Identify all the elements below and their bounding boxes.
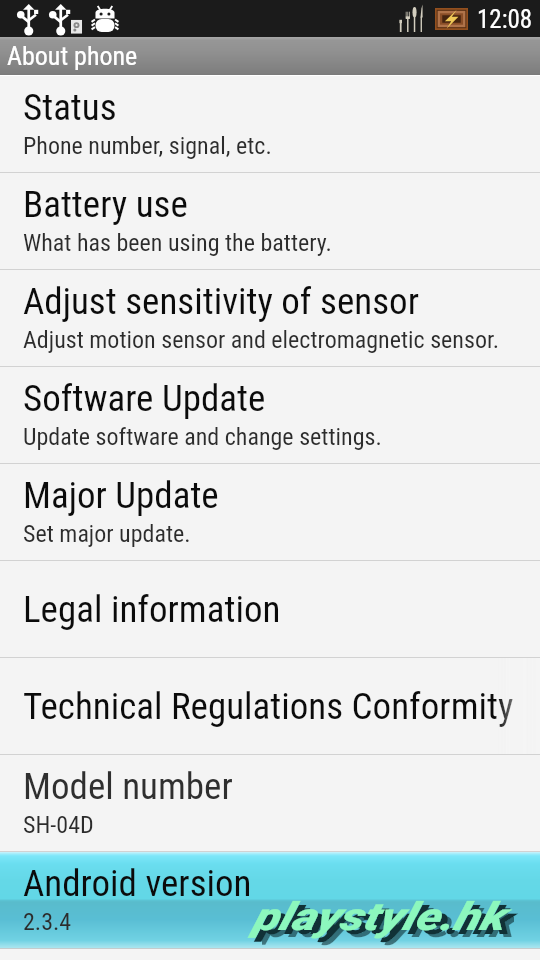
button[interactable]: Adjust sensitivity of sensor (0, 270, 540, 366)
staticText: 12:08 (477, 5, 533, 34)
staticText: Battery use (23, 183, 188, 226)
staticText: Android version (23, 862, 252, 905)
staticText: Adjust sensitivity of sensor (23, 280, 419, 323)
staticText: Major Update (23, 474, 219, 517)
button[interactable]: Battery use (0, 173, 540, 269)
button[interactable]: Legal information (0, 561, 540, 657)
staticText: playstyle.hk (258, 898, 510, 944)
staticText: Legal information (23, 588, 281, 631)
staticText: Set major update. (23, 520, 191, 548)
staticText: Technical Regulations Conformity (23, 685, 514, 728)
button[interactable]: Android version (0, 852, 540, 948)
staticText: playstyle.hk (252, 894, 504, 940)
button[interactable]: Software Update (0, 367, 540, 463)
button[interactable]: Technical Regulations Conformity (0, 658, 540, 754)
button[interactable]: Status (0, 76, 540, 172)
staticText: Update software and change settings. (23, 423, 382, 451)
staticText: About phone (7, 41, 138, 71)
staticText: What has been using the battery. (23, 229, 332, 257)
other: Status indicators (0, 0, 540, 37)
staticText: Status (23, 86, 117, 129)
staticText: Phone number, signal, etc. (23, 132, 272, 160)
button[interactable]: Major Update (0, 464, 540, 560)
staticText: playstyle.hk (262, 901, 514, 947)
staticText: 2.3.4 (23, 908, 72, 936)
staticText: Software Update (23, 377, 266, 420)
staticText: Adjust motion sensor and electromagnetic… (23, 326, 500, 354)
staticText: SH-04D (23, 811, 94, 839)
staticText: Model number (23, 765, 233, 808)
button[interactable]: Model number (0, 755, 540, 851)
